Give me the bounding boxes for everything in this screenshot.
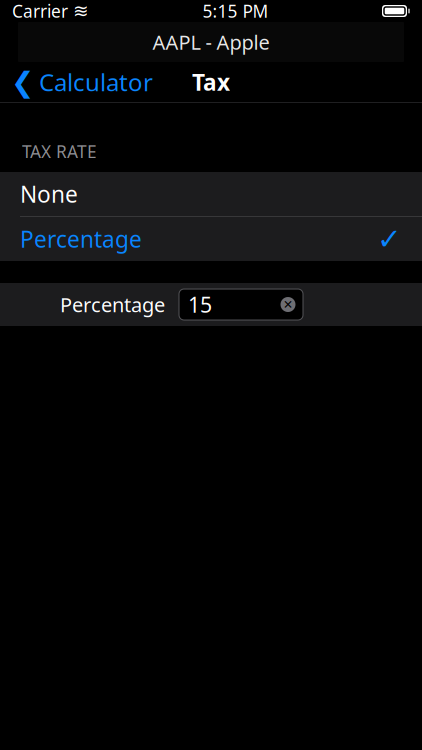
staticText: AAPL - Apple <box>152 29 269 55</box>
staticText: Carrier <box>12 0 68 22</box>
staticText: 15 <box>188 290 212 319</box>
button[interactable]: Percentage <box>0 217 422 261</box>
staticText: ✕ <box>283 298 293 311</box>
staticText: Calculator <box>39 66 153 98</box>
button[interactable]: ❮ <box>0 57 153 107</box>
button[interactable]: Clear text <box>279 295 297 313</box>
staticText: None <box>20 179 78 209</box>
staticText: ≋ <box>73 0 89 22</box>
staticText: Percentage <box>20 224 142 254</box>
button[interactable]: None <box>0 172 422 216</box>
staticText: Tax <box>192 67 230 97</box>
button[interactable]: 15 <box>179 289 303 320</box>
staticText: Percentage <box>60 291 165 318</box>
staticText: TAX RATE <box>22 140 97 163</box>
staticText: 5:15 PM <box>202 0 268 22</box>
staticText: ✓ <box>377 222 402 256</box>
staticText: ❮ <box>11 66 34 98</box>
